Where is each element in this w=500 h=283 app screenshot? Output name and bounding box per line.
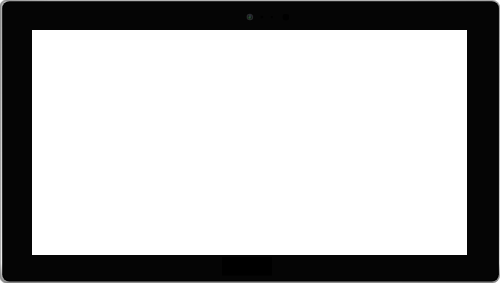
button[interactable]: Front camera <box>242 9 258 25</box>
